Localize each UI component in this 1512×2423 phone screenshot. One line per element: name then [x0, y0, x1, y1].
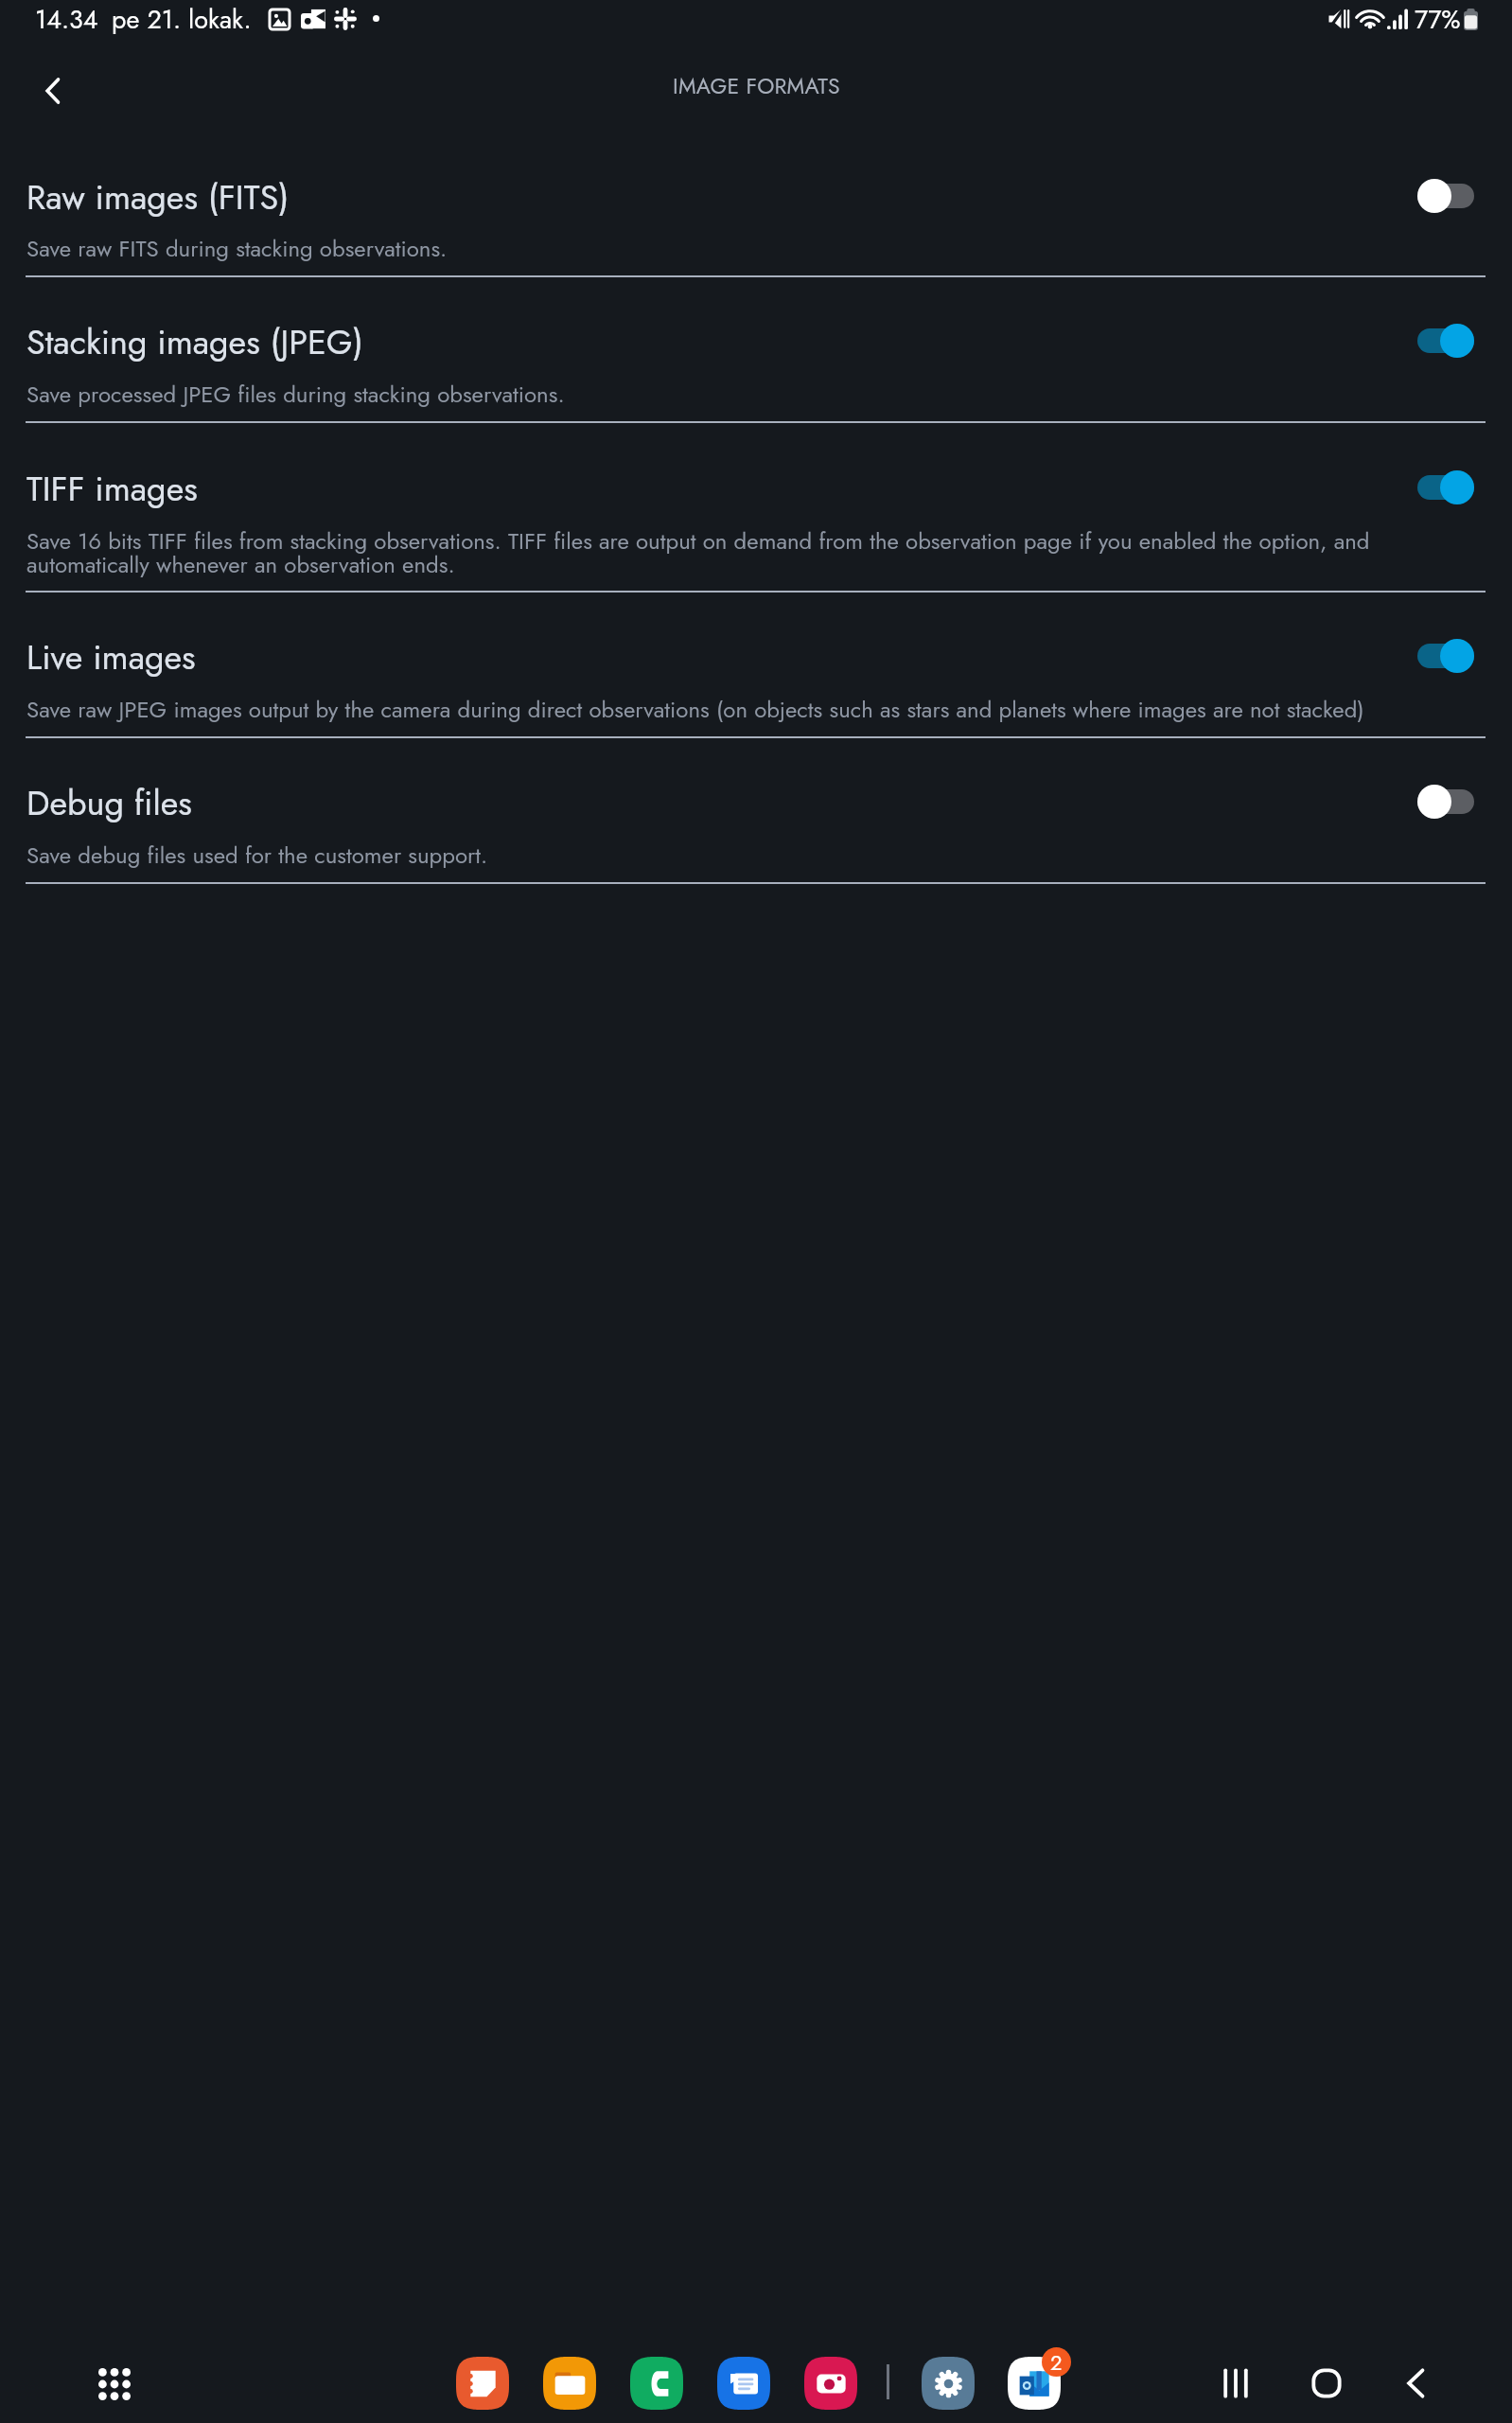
- button[interactable]: Stacking images (JPEG): [1412, 319, 1482, 363]
- button[interactable]: Camera: [804, 2357, 857, 2410]
- button[interactable]: Settings: [922, 2357, 975, 2410]
- staticText: Live images: [26, 632, 196, 681]
- button[interactable]: Raw images (FITS): [0, 133, 1512, 277]
- staticText: Raw images (FITS): [26, 172, 290, 221]
- staticText: pe 21. lokak.: [112, 1, 252, 38]
- button[interactable]: Phone: [630, 2357, 683, 2410]
- button[interactable]: Stacking images (JPEG): [0, 277, 1512, 423]
- staticText: 2: [1050, 2347, 1063, 2377]
- staticText: 77%: [1415, 1, 1461, 38]
- button[interactable]: Back: [25, 62, 81, 119]
- button[interactable]: Debug files: [1412, 780, 1482, 823]
- button[interactable]: Debug files: [0, 738, 1512, 884]
- staticText: Stacking images (JPEG): [26, 317, 363, 366]
- staticText: Save processed JPEG files during stackin…: [26, 378, 1370, 411]
- button[interactable]: All apps: [90, 2360, 139, 2409]
- button[interactable]: Live images: [1412, 634, 1482, 678]
- staticText: Save raw FITS during stacking observatio…: [26, 232, 1370, 265]
- button[interactable]: Files: [543, 2357, 596, 2410]
- button[interactable]: Home: [1296, 2353, 1357, 2414]
- staticText: Save raw JPEG images output by the camer…: [26, 693, 1370, 726]
- button[interactable]: Messages: [717, 2357, 770, 2410]
- button[interactable]: Back: [1386, 2353, 1447, 2414]
- staticText: TIFF images: [26, 464, 198, 513]
- button[interactable]: TIFF images: [1412, 466, 1482, 509]
- staticText: Save debug files used for the customer s…: [26, 839, 1370, 872]
- button[interactable]: Raw images (FITS): [1412, 174, 1482, 218]
- button[interactable]: Recents: [1205, 2353, 1266, 2414]
- staticText: Debug files: [26, 778, 192, 827]
- staticText: 14.34: [35, 1, 98, 38]
- button[interactable]: TIFF images: [0, 423, 1512, 592]
- button[interactable]: Outlook: [1008, 2357, 1061, 2410]
- button[interactable]: Live images: [0, 592, 1512, 738]
- button[interactable]: Notes: [456, 2357, 509, 2410]
- staticText: Save 16 bits TIFF files from stacking ob…: [26, 524, 1370, 581]
- staticText: IMAGE FORMATS: [673, 70, 840, 101]
